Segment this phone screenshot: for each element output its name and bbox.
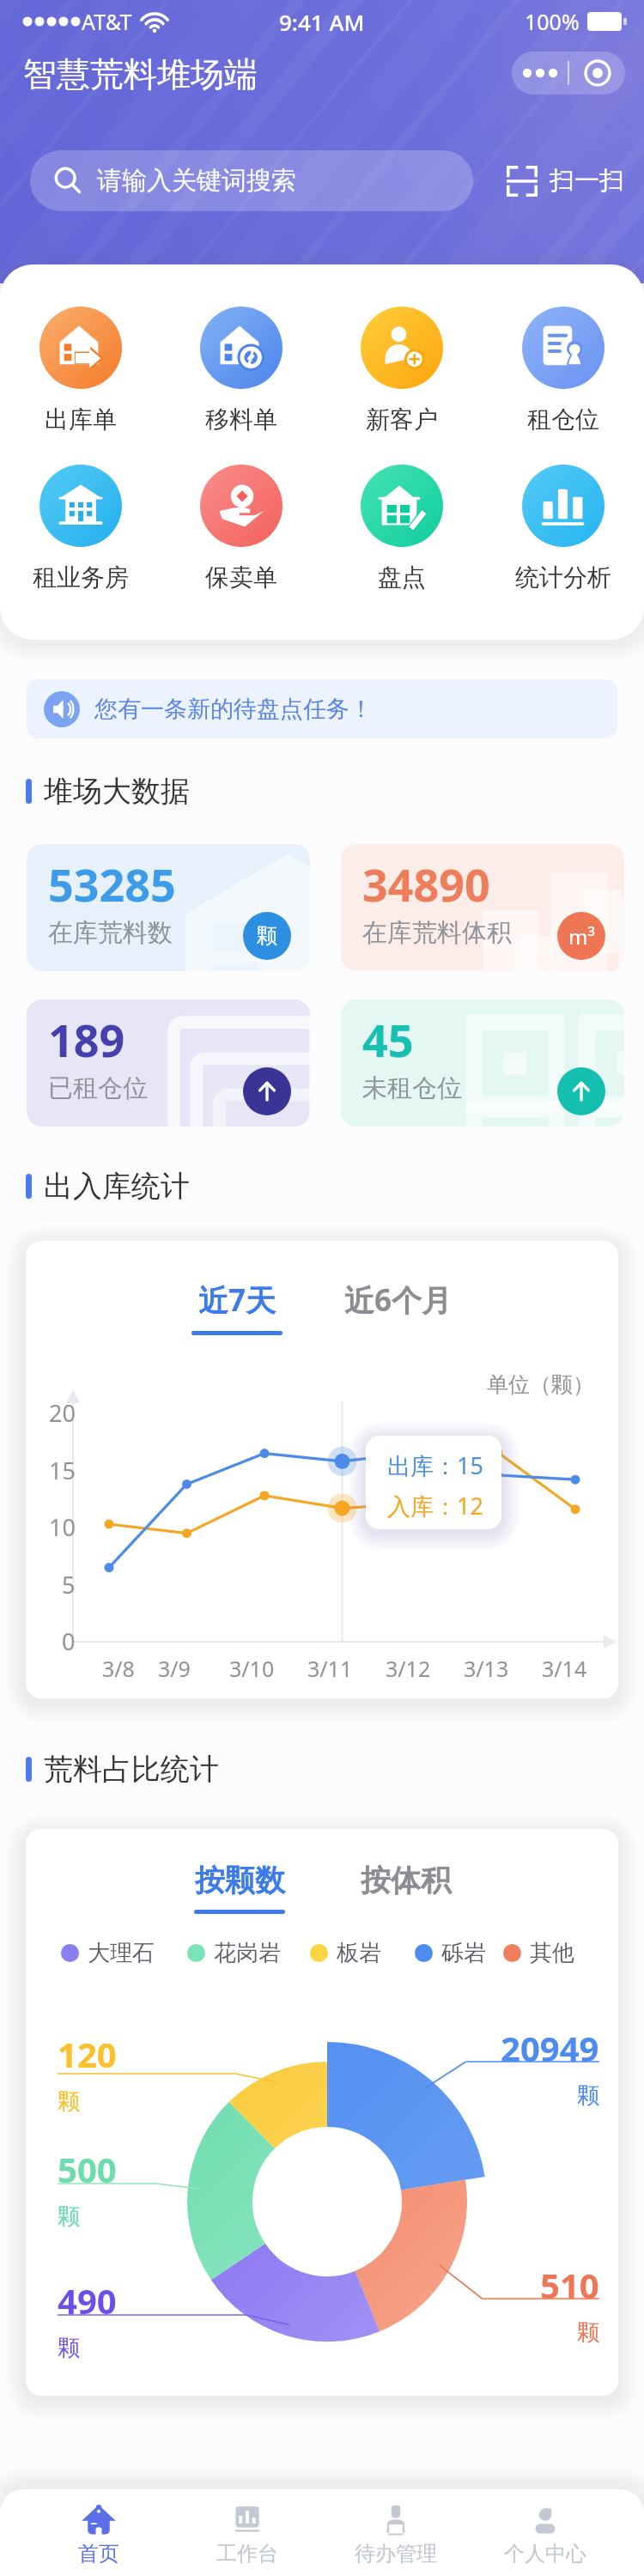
button[interactable]: 花岗岩 bbox=[187, 1939, 281, 1966]
staticText: 花岗岩 bbox=[214, 1939, 281, 1966]
staticText: 按颗数 bbox=[195, 1862, 285, 1899]
staticText: 0 bbox=[62, 1625, 76, 1657]
staticText: 租仓位 bbox=[527, 404, 599, 434]
staticText: 荒料占比统计 bbox=[44, 1751, 219, 1788]
staticText: 3/14 bbox=[542, 1654, 587, 1683]
staticText: 3/13 bbox=[464, 1654, 509, 1683]
staticText: 颗 bbox=[577, 2081, 599, 2110]
staticText: 颗 bbox=[257, 923, 277, 949]
button[interactable]: 近6个月 bbox=[344, 1279, 453, 1335]
staticText: 砾岩 bbox=[441, 1939, 486, 1966]
staticText: 490 bbox=[58, 2277, 117, 2324]
staticText: 在库荒料体积 bbox=[362, 917, 512, 949]
button[interactable]: 53285 bbox=[27, 844, 310, 971]
button[interactable]: 34890 bbox=[341, 844, 624, 971]
button[interactable]: 板岩 bbox=[310, 1939, 381, 1966]
button[interactable]: 移料单 bbox=[161, 307, 321, 434]
staticText: 在库荒料数 bbox=[48, 917, 173, 949]
staticText: 大理石 bbox=[88, 1939, 155, 1966]
staticText: 移料单 bbox=[205, 404, 277, 434]
staticText: 智慧荒料堆场端 bbox=[23, 53, 258, 95]
staticText: 个人中心 bbox=[504, 2541, 586, 2567]
button[interactable]: 统计分析 bbox=[483, 465, 644, 592]
staticText: 扫一扫 bbox=[550, 165, 624, 197]
staticText: 3/11 bbox=[307, 1654, 353, 1683]
staticText: 颗 bbox=[58, 2202, 80, 2231]
button[interactable]: 关闭 bbox=[569, 52, 625, 94]
staticText: 工作台 bbox=[216, 2541, 278, 2567]
staticText: 板岩 bbox=[337, 1939, 381, 1966]
button[interactable]: 租业务房 bbox=[0, 465, 161, 592]
staticText: 其他 bbox=[530, 1939, 574, 1966]
staticText: 3/12 bbox=[386, 1654, 431, 1683]
staticText: 100% bbox=[525, 7, 580, 36]
staticText: 颗 bbox=[58, 2087, 80, 2116]
staticText: 5 bbox=[62, 1569, 76, 1601]
staticText: 出库单 bbox=[45, 404, 117, 434]
staticText: 堆场大数据 bbox=[44, 773, 190, 810]
staticText: 10 bbox=[49, 1511, 76, 1543]
staticText: 20949 bbox=[501, 2025, 599, 2071]
staticText: 请输入关键词搜索 bbox=[97, 165, 296, 197]
button[interactable]: 近7天 bbox=[191, 1279, 283, 1335]
button[interactable]: 请输入关键词搜索 bbox=[30, 150, 473, 211]
button[interactable]: 砾岩 bbox=[415, 1939, 486, 1966]
staticText: 已租仓位 bbox=[48, 1072, 148, 1104]
button[interactable]: 按颗数 bbox=[194, 1862, 285, 1914]
button[interactable]: 首页 bbox=[24, 2489, 173, 2576]
button[interactable]: 工作台 bbox=[173, 2489, 321, 2576]
staticText: 189 bbox=[48, 1009, 125, 1070]
button[interactable]: 按体积 bbox=[361, 1862, 451, 1914]
button[interactable]: 新客户 bbox=[321, 307, 483, 434]
staticText: m³ bbox=[568, 922, 595, 951]
staticText: 入库：12 bbox=[387, 1490, 483, 1522]
button[interactable]: 更多 bbox=[512, 52, 568, 94]
staticText: 首页 bbox=[78, 2541, 119, 2567]
staticText: 新客户 bbox=[366, 404, 438, 434]
staticText: 出入库统计 bbox=[44, 1168, 190, 1205]
staticText: 500 bbox=[58, 2146, 117, 2192]
button[interactable]: 45 bbox=[341, 999, 624, 1127]
staticText: 保卖单 bbox=[205, 562, 277, 592]
button[interactable]: 个人中心 bbox=[471, 2489, 620, 2576]
staticText: 按体积 bbox=[361, 1862, 451, 1899]
button[interactable]: 待办管理 bbox=[321, 2489, 471, 2576]
staticText: 3/10 bbox=[229, 1654, 275, 1683]
button[interactable]: 保卖单 bbox=[161, 465, 321, 592]
button[interactable]: 大理石 bbox=[61, 1939, 155, 1966]
staticText: 未租仓位 bbox=[362, 1072, 462, 1104]
staticText: 20 bbox=[49, 1397, 76, 1429]
button[interactable]: 租仓位 bbox=[483, 307, 644, 434]
staticText: 颗 bbox=[577, 2318, 599, 2347]
staticText: 3/9 bbox=[158, 1654, 191, 1683]
button[interactable]: 您有一条新的待盘点任务！ bbox=[27, 679, 617, 738]
button[interactable]: 扫一扫 bbox=[507, 165, 624, 197]
staticText: 9:41 AM bbox=[279, 7, 365, 37]
button[interactable]: 盘点 bbox=[321, 465, 483, 592]
staticText: 租业务房 bbox=[33, 562, 129, 592]
staticText: 盘点 bbox=[378, 562, 426, 592]
staticText: 您有一条新的待盘点任务！ bbox=[94, 695, 373, 724]
staticText: 近7天 bbox=[198, 1279, 276, 1321]
staticText: 120 bbox=[58, 2031, 117, 2077]
button[interactable]: 出库单 bbox=[0, 307, 161, 434]
staticText: 45 bbox=[362, 1009, 414, 1070]
staticText: AT&T bbox=[82, 7, 132, 36]
staticText: 统计分析 bbox=[515, 562, 611, 592]
staticText: 出库：15 bbox=[387, 1449, 483, 1481]
button[interactable]: 189 bbox=[27, 999, 310, 1127]
button[interactable]: 其他 bbox=[503, 1939, 574, 1966]
staticText: 15 bbox=[49, 1455, 76, 1486]
staticText: 待办管理 bbox=[355, 2541, 437, 2567]
staticText: 53285 bbox=[48, 854, 176, 914]
staticText: 510 bbox=[540, 2262, 599, 2308]
staticText: 近6个月 bbox=[344, 1279, 453, 1321]
staticText: 3/8 bbox=[102, 1654, 135, 1683]
staticText: 颗 bbox=[58, 2334, 80, 2362]
staticText: 单位（颗） bbox=[487, 1371, 594, 1398]
staticText: 34890 bbox=[362, 854, 490, 914]
